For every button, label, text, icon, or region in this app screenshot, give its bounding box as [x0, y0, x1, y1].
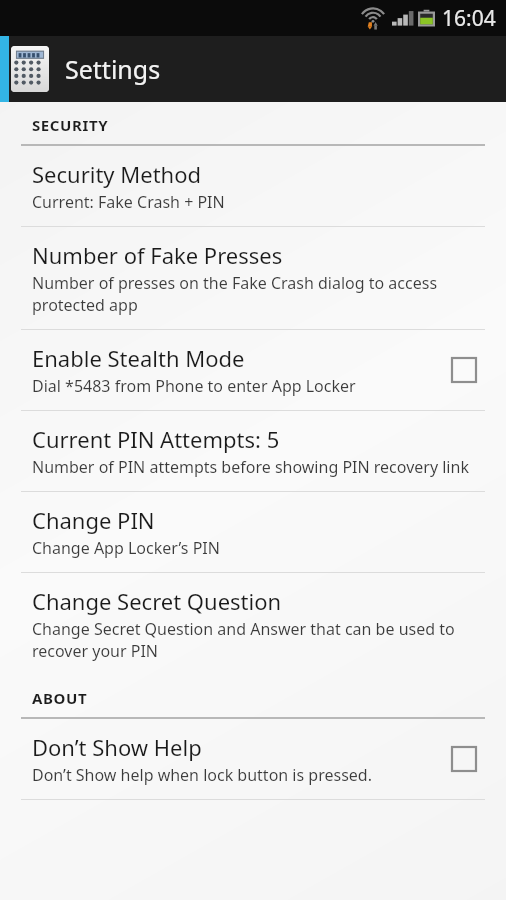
staticText: ABOUT — [32, 688, 88, 708]
button[interactable]: Settings, up — [0, 36, 506, 102]
staticText: Number of presses on the Fake Crash dial… — [32, 272, 486, 316]
staticText: Settings — [65, 52, 161, 86]
button[interactable]: Enable Stealth Mode — [0, 330, 506, 410]
staticText: Don’t Show help when lock button is pres… — [32, 764, 372, 786]
staticText: Enable Stealth Mode — [32, 343, 245, 373]
staticText: 16:04 — [442, 4, 496, 33]
staticText: SECURITY — [32, 115, 109, 135]
staticText: Dial *5483 from Phone to enter App Locke… — [32, 375, 356, 397]
staticText: Change Secret Question and Answer that c… — [32, 618, 486, 662]
staticText: Change Secret Question — [32, 586, 282, 616]
button[interactable]: Security Method — [0, 146, 506, 226]
button[interactable]: Change Secret Question — [0, 573, 506, 675]
staticText: Change PIN — [32, 505, 155, 535]
button[interactable]: Number of Fake Presses — [0, 227, 506, 329]
button[interactable]: Current PIN Attempts: 5 — [0, 411, 506, 491]
staticText: Change App Locker’s PIN — [32, 537, 220, 559]
staticText: Current: Fake Crash + PIN — [32, 191, 225, 213]
staticText: Number of Fake Presses — [32, 240, 283, 270]
staticText: Security Method — [32, 159, 202, 189]
button[interactable]: Enable Stealth Mode checkbox — [442, 348, 486, 392]
staticText: Current PIN Attempts: 5 — [32, 424, 280, 454]
button[interactable]: Change PIN — [0, 492, 506, 572]
button[interactable]: Don’t Show Help checkbox — [442, 737, 486, 781]
button[interactable]: Don’t Show Help — [0, 719, 506, 799]
staticText: Don’t Show Help — [32, 732, 202, 762]
staticText: Number of PIN attempts before showing PI… — [32, 456, 469, 478]
